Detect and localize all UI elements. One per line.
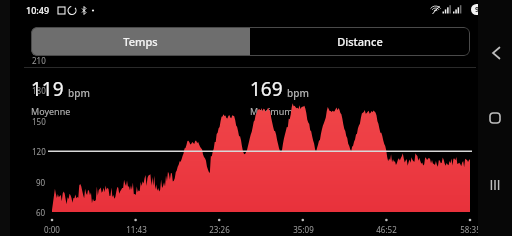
staticText: Maximum bbox=[250, 105, 293, 117]
staticText: bpm bbox=[68, 86, 90, 100]
staticText: 210 bbox=[32, 55, 46, 66]
staticText: Temps bbox=[123, 34, 158, 49]
staticText: 180 bbox=[32, 85, 46, 96]
staticText: 60 bbox=[36, 207, 46, 218]
staticText: 90 bbox=[36, 177, 46, 188]
staticText: 11:43 bbox=[126, 224, 147, 235]
button[interactable]: Home bbox=[482, 105, 508, 131]
button[interactable]: Recents bbox=[482, 172, 508, 198]
button[interactable]: Temps bbox=[31, 27, 250, 56]
staticText: 119 bbox=[31, 76, 64, 102]
staticText: bpm bbox=[287, 86, 309, 100]
staticText: 10:49 bbox=[26, 4, 50, 16]
staticText: 23:26 bbox=[209, 224, 230, 235]
staticText: 120 bbox=[32, 146, 46, 157]
staticText: 46:52 bbox=[376, 224, 397, 235]
staticText: 150 bbox=[32, 116, 46, 127]
staticText: Moyenne bbox=[31, 105, 71, 117]
button[interactable]: Back bbox=[482, 40, 508, 66]
staticText: 0:00 bbox=[44, 224, 60, 235]
staticText: 58:35 bbox=[460, 224, 481, 235]
staticText: 35:09 bbox=[293, 224, 314, 235]
staticText: Distance bbox=[337, 34, 383, 49]
staticText: 169 bbox=[250, 76, 283, 102]
staticText: 91 bbox=[475, 5, 484, 15]
button[interactable]: Distance bbox=[250, 27, 470, 56]
